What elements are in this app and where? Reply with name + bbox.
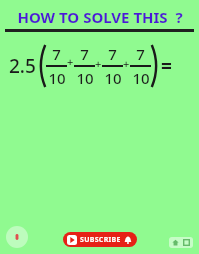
staticText: SUBSCRIBE	[80, 235, 121, 245]
button[interactable]: SUBSCRIBE	[63, 232, 137, 247]
button[interactable]: HOW TO SOLVE THIS ?	[0, 7, 199, 27]
staticText: 10	[48, 68, 66, 88]
staticText: +	[67, 54, 74, 69]
button[interactable]: Screen controls	[169, 237, 193, 248]
staticText: 10	[132, 68, 150, 88]
staticText: 7	[52, 44, 61, 64]
staticText: 10	[104, 68, 122, 88]
staticText: +	[123, 56, 130, 71]
staticText: 2.5	[9, 53, 36, 79]
button[interactable]: Profile	[6, 226, 28, 248]
staticText: 7	[108, 44, 117, 64]
staticText: 7	[136, 44, 145, 64]
staticText: HOW TO SOLVE THIS ?	[17, 7, 183, 27]
staticText: 10	[76, 68, 94, 88]
staticText: =	[161, 53, 172, 79]
staticText: 7	[80, 44, 89, 64]
staticText: +	[95, 56, 102, 71]
